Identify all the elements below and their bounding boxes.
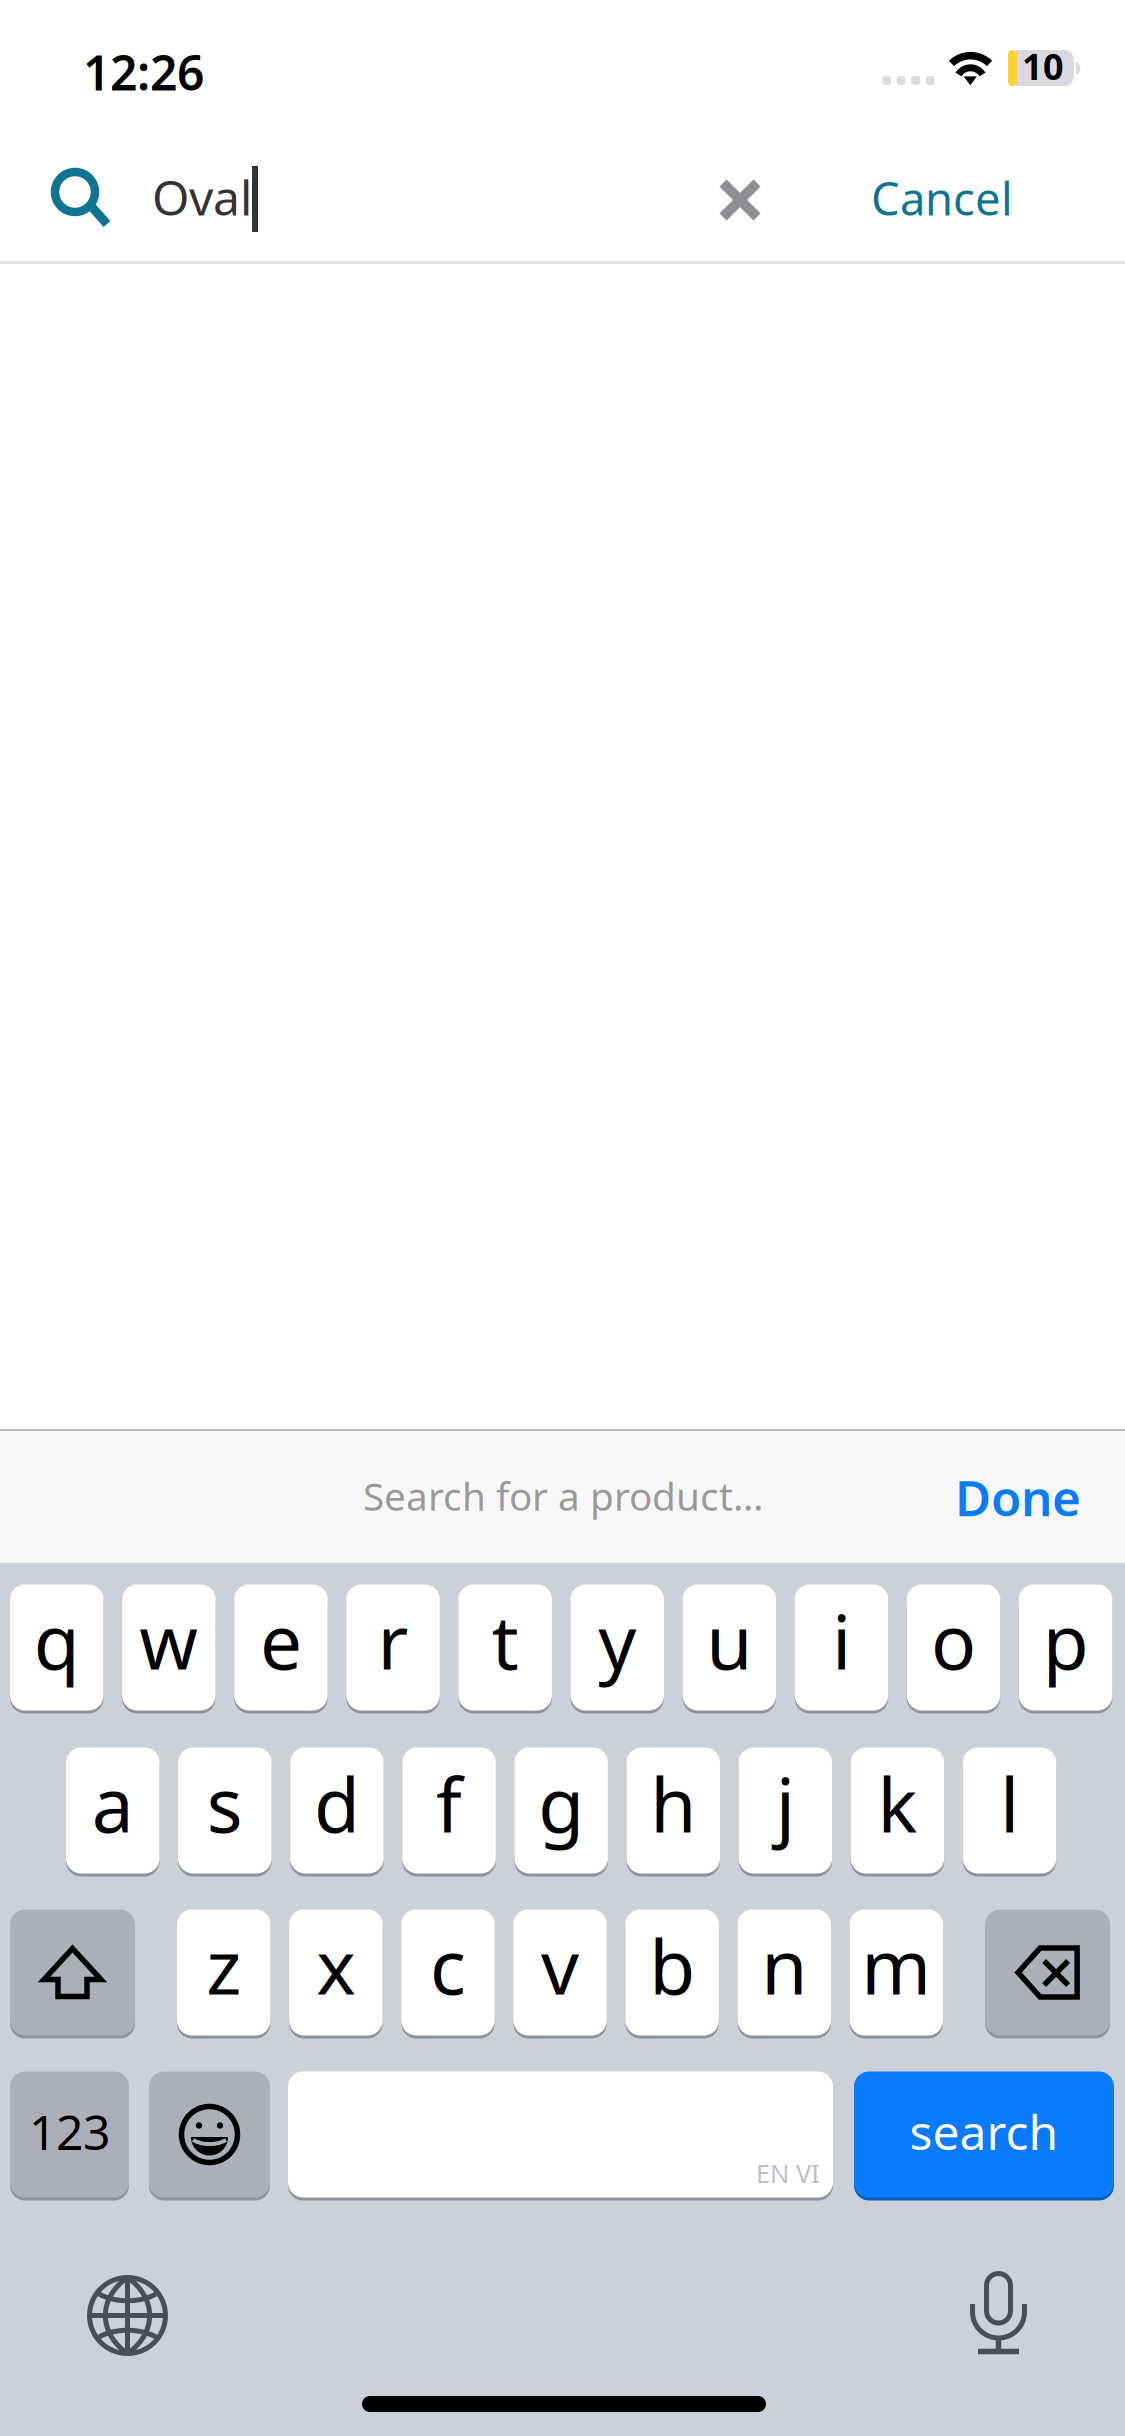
button[interactable]: Cancel (871, 158, 1031, 238)
staticText: j (776, 1754, 795, 1853)
button[interactable]: Space (288, 2070, 833, 2199)
button[interactable]: p (1019, 1583, 1112, 1712)
staticText: h (650, 1754, 696, 1853)
button[interactable]: Delete (985, 1908, 1110, 2037)
button[interactable]: w (122, 1583, 216, 1712)
button[interactable]: i (795, 1583, 888, 1712)
staticText: d (314, 1754, 360, 1853)
staticText: 10 (1022, 42, 1064, 90)
button[interactable]: u (683, 1583, 776, 1712)
button[interactable]: Clear search text (706, 166, 774, 234)
staticText: z (206, 1916, 241, 2015)
staticText: n (761, 1916, 807, 2015)
button[interactable]: t (458, 1583, 552, 1712)
staticText: Cancel (871, 168, 1013, 228)
button[interactable]: r (346, 1583, 440, 1712)
button[interactable]: g (514, 1746, 608, 1875)
staticText: v (541, 1916, 579, 2015)
staticText: 123 (29, 2100, 110, 2163)
staticText: y (598, 1591, 636, 1690)
button[interactable]: v (513, 1908, 607, 2037)
button[interactable]: j (739, 1746, 832, 1875)
button[interactable]: Dictate (970, 2269, 1027, 2355)
staticText: x (316, 1916, 355, 2015)
button[interactable]: e (234, 1583, 328, 1712)
staticText: l (1000, 1754, 1019, 1853)
staticText: o (931, 1591, 976, 1690)
staticText: u (706, 1591, 752, 1690)
button[interactable]: q (10, 1583, 103, 1712)
staticText: EN VI (756, 2156, 820, 2190)
staticText: r (377, 1591, 408, 1690)
button[interactable]: k (851, 1746, 944, 1875)
button[interactable]: d (290, 1746, 384, 1875)
button[interactable]: s (178, 1746, 272, 1875)
staticText: s (207, 1754, 243, 1853)
button[interactable]: z (177, 1908, 270, 2037)
staticText: g (538, 1754, 584, 1853)
button[interactable]: n (737, 1908, 831, 2037)
button[interactable]: o (907, 1583, 1000, 1712)
staticText: search (909, 2100, 1058, 2163)
button[interactable]: c (401, 1908, 495, 2037)
staticText: m (861, 1916, 931, 2015)
button[interactable]: m (850, 1908, 943, 2037)
button[interactable]: h (626, 1746, 720, 1875)
staticText: Search for a product... (363, 1470, 763, 1521)
button[interactable]: Shift (10, 1908, 135, 2037)
button[interactable]: x (289, 1908, 383, 2037)
button[interactable]: f (402, 1746, 496, 1875)
button[interactable]: Done (955, 1462, 1125, 1532)
staticText: q (34, 1591, 80, 1690)
staticText: p (1043, 1591, 1089, 1690)
button[interactable]: Next keyboard (87, 2275, 168, 2356)
staticText: 12:26 (83, 40, 204, 104)
staticText: Done (955, 1464, 1081, 1530)
button[interactable]: Emoji keyboard (149, 2070, 270, 2199)
staticText: e (260, 1591, 302, 1690)
staticText: f (436, 1754, 462, 1853)
staticText: w (139, 1591, 198, 1690)
button[interactable]: b (625, 1908, 719, 2037)
staticText: c (430, 1916, 466, 2015)
button[interactable]: a (66, 1746, 159, 1875)
button[interactable]: 123 (10, 2070, 129, 2199)
staticText: Oval (152, 165, 252, 229)
staticText: b (649, 1916, 695, 2015)
staticText: i (832, 1591, 851, 1690)
button[interactable]: search (854, 2070, 1114, 2199)
button[interactable]: y (570, 1583, 664, 1712)
button[interactable]: l (963, 1746, 1056, 1875)
staticText: t (492, 1591, 519, 1690)
staticText: k (877, 1754, 917, 1853)
staticText: a (92, 1754, 134, 1853)
